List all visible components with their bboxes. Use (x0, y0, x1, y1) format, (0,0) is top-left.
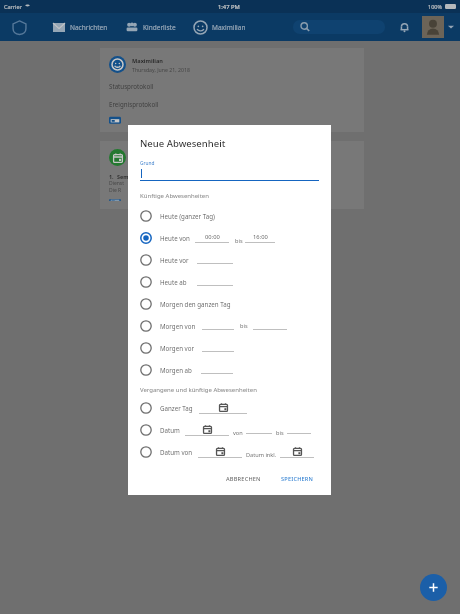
button[interactable]: Morgen den ganzen Tag (140, 293, 319, 315)
button[interactable]: Suche (293, 20, 385, 34)
staticText: Nachrichten (70, 23, 108, 32)
staticText: 1. (109, 173, 114, 180)
staticText: Heute von (160, 234, 190, 242)
button[interactable]: Kinderliste (126, 22, 176, 32)
button[interactable]: ABBRECHEN (221, 472, 266, 486)
button[interactable]: Datum von (140, 441, 319, 463)
staticText: Maximilian (132, 57, 163, 65)
button[interactable]: Heute von (140, 227, 319, 249)
staticText: Heute ab (160, 278, 187, 286)
button[interactable]: Hinzufügen (420, 574, 447, 601)
button[interactable]: Ganzer Tag (140, 397, 319, 419)
staticText: Heute (ganzer Tag) (160, 212, 215, 220)
staticText: von (233, 429, 243, 437)
button[interactable]: Nachrichten (53, 23, 108, 32)
button[interactable] (448, 24, 454, 30)
button[interactable]: Morgen von (140, 315, 319, 337)
staticText: Morgen ab (160, 366, 192, 374)
button[interactable]: Morgen ab (140, 359, 319, 381)
staticText: Datum inkl. (246, 451, 277, 459)
staticText: Vergangene und künftige Abwesenheiten (140, 386, 257, 394)
staticText: Grund (140, 160, 155, 167)
button[interactable]: Maximilian (194, 21, 246, 34)
button[interactable]: Home (12, 20, 27, 35)
staticText: Ganzer Tag (160, 404, 193, 412)
staticText: Kinderliste (143, 23, 176, 32)
button[interactable]: Heute ab (140, 271, 319, 293)
staticText: Morgen vor (160, 344, 195, 352)
button[interactable]: Kalender (109, 199, 121, 201)
button[interactable]: Profil (422, 16, 444, 38)
staticText: Künftige Abwesenheiten (140, 192, 209, 200)
staticText: Statusprotokoll (109, 82, 154, 90)
staticText: Carrier (4, 3, 22, 10)
staticText: Thursday, June 21, 2018 (132, 66, 190, 73)
staticText: Sem (117, 173, 129, 180)
staticText: Morgen von (160, 322, 196, 330)
button[interactable]: Heute (ganzer Tag) (140, 205, 319, 227)
staticText: Ereignisprotokoll (109, 100, 159, 108)
button[interactable]: Datum (140, 419, 319, 441)
button[interactable]: Kalender (109, 116, 121, 124)
staticText: Datum (160, 426, 180, 434)
button[interactable]: Heute vor (140, 249, 319, 271)
staticText: Datum von (160, 448, 193, 456)
staticText: SPEICHERN (281, 475, 314, 483)
button[interactable]: Morgen vor (140, 337, 319, 359)
staticText: 1:47 PM (218, 3, 240, 11)
staticText: Neue Abwesenheit (140, 137, 226, 150)
staticText: bis (235, 237, 243, 245)
staticText: Dienst (109, 180, 125, 187)
staticText: bis (276, 429, 284, 437)
staticText: 100% (428, 3, 443, 10)
staticText: bis (240, 322, 248, 330)
button[interactable]: Benachrichtigungen (399, 22, 410, 33)
staticText: 00:00 (205, 233, 220, 241)
staticText: 16:00 (253, 233, 268, 241)
staticText: ABBRECHEN (226, 475, 261, 483)
staticText: Die R (109, 187, 122, 194)
staticText: Morgen den ganzen Tag (160, 300, 231, 308)
staticText: Heute vor (160, 256, 189, 264)
button[interactable]: SPEICHERN (276, 472, 319, 486)
staticText: Maximilian (212, 23, 246, 32)
